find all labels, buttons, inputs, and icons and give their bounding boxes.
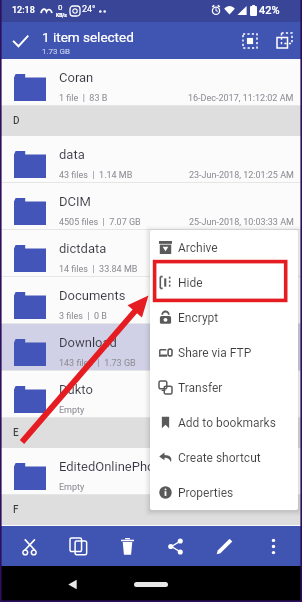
- staticText: Dukto: [59, 382, 93, 397]
- button[interactable]: Rename: [204, 526, 244, 566]
- staticText: F: [13, 504, 19, 516]
- staticText: 1 item selected: [42, 29, 134, 45]
- button[interactable]: Properties: [150, 475, 298, 510]
- button[interactable]: Hide: [150, 265, 298, 300]
- staticText: Coran: [59, 70, 94, 85]
- button[interactable]: Invert selection: [271, 27, 298, 54]
- staticText: Add to bookmarks: [178, 416, 276, 430]
- button[interactable]: Transfer: [150, 370, 298, 405]
- button[interactable]: Archive: [150, 230, 298, 265]
- staticText: 43 files | 1.14 MB: [59, 170, 133, 181]
- button[interactable]: data: [0, 136, 302, 183]
- button[interactable]: Select all: [236, 27, 263, 54]
- button[interactable]: Encrypt: [150, 300, 298, 335]
- staticText: dictdata: [59, 241, 107, 256]
- staticText: 1.73 GB: [42, 47, 71, 56]
- button[interactable]: Add to bookmarks: [150, 405, 298, 440]
- staticText: Properties: [178, 486, 234, 500]
- staticText: Download: [59, 335, 117, 350]
- staticText: 16-Dec-2017, 11:12:02 AM: [188, 93, 294, 104]
- button[interactable]: dictdata: [0, 230, 302, 277]
- staticText: Transfer: [178, 381, 223, 395]
- staticText: EditedOnlinePhotos: [59, 459, 173, 474]
- staticText: 0: [58, 3, 63, 12]
- staticText: E: [13, 427, 19, 439]
- button[interactable]: Create shortcut: [150, 440, 298, 475]
- staticText: Archive: [178, 241, 218, 255]
- button[interactable]: Delete: [107, 526, 147, 566]
- staticText: 4505 files | 7.07 GB: [59, 217, 141, 228]
- staticText: 12:18: [12, 5, 35, 16]
- staticText: 143 files | 1.73 GB: [59, 358, 136, 369]
- button[interactable]: Done: [6, 27, 34, 55]
- staticText: DCIM: [59, 194, 91, 209]
- button[interactable]: Download: [0, 324, 302, 371]
- button[interactable]: DCIM: [0, 183, 302, 230]
- staticText: Hide: [178, 276, 203, 290]
- staticText: 23-Jun-2018, 12:01:25 AM: [189, 170, 294, 181]
- button[interactable]: Cut: [9, 526, 49, 566]
- button[interactable]: EditedOnlinePhotos: [0, 448, 302, 495]
- staticText: Documents: [59, 288, 126, 303]
- staticText: 3 files | 0 B: [59, 311, 107, 322]
- staticText: D: [13, 115, 20, 127]
- button[interactable]: Dukto: [0, 371, 302, 418]
- staticText: 1 file | 83 B: [59, 93, 108, 104]
- staticText: 42%: [259, 4, 280, 17]
- button[interactable]: Documents: [0, 277, 302, 324]
- button[interactable]: Home: [121, 566, 181, 602]
- staticText: Share via FTP: [178, 346, 252, 360]
- button[interactable]: Back: [54, 566, 90, 602]
- staticText: 25-Jun-2018, 10:03:33 AM: [189, 217, 294, 228]
- staticText: Empty: [59, 405, 85, 416]
- staticText: data: [59, 147, 85, 162]
- staticText: Create shortcut: [178, 451, 261, 465]
- staticText: 24°: [82, 4, 96, 15]
- button[interactable]: Coran: [0, 59, 302, 106]
- button[interactable]: More options: [253, 526, 293, 566]
- staticText: Empty: [59, 482, 85, 493]
- staticText: 14 files | 33.84 MB: [59, 264, 138, 275]
- button[interactable]: Share: [155, 526, 195, 566]
- button[interactable]: Copy: [58, 526, 98, 566]
- button[interactable]: Share via FTP: [150, 335, 298, 370]
- staticText: Encrypt: [178, 311, 219, 325]
- staticText: KB/s: [56, 12, 67, 18]
